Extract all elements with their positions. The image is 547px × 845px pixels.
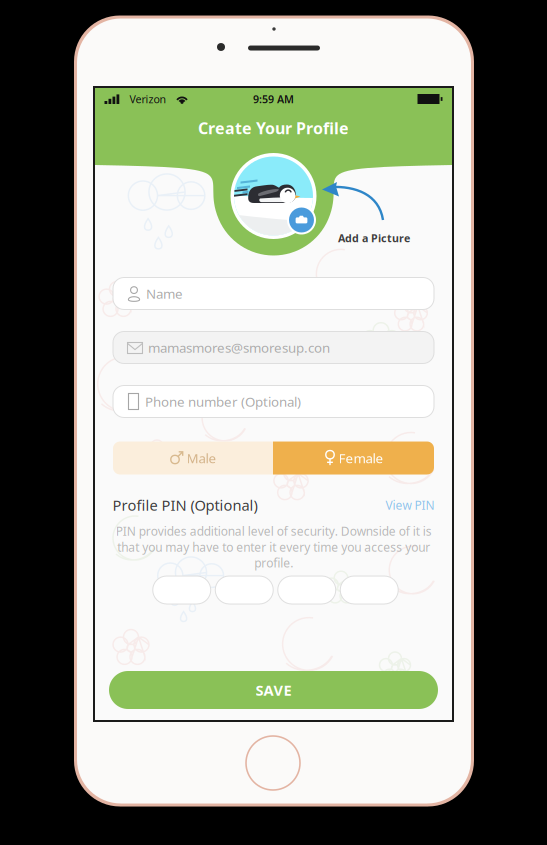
staticText: PIN provides additional level of securit…	[115, 523, 431, 571]
staticText: Create Your Profile	[198, 117, 349, 139]
button[interactable]: Male	[113, 441, 273, 474]
button[interactable]: PIN digit	[153, 576, 211, 604]
staticText: Female	[338, 449, 383, 467]
staticText: SAVE	[255, 680, 291, 700]
button[interactable]: Add a Picture	[287, 205, 316, 234]
staticText: Name	[146, 285, 183, 302]
staticText: View PIN	[385, 497, 434, 513]
button[interactable]: mamasmores@smoresup.con	[113, 331, 434, 363]
staticText: 9:59 AM	[253, 92, 294, 106]
button[interactable]: View PIN	[385, 497, 434, 513]
staticText: Phone number (Optional)	[145, 393, 301, 410]
button[interactable]: Phone number (Optional)	[113, 385, 434, 417]
staticText: Male	[186, 449, 216, 467]
button[interactable]: Female	[273, 441, 434, 474]
staticText: mamasmores@smoresup.con	[148, 339, 330, 356]
button[interactable]: PIN digit	[278, 576, 336, 604]
button[interactable]: PIN digit	[215, 576, 273, 604]
staticText: Verizon	[129, 92, 166, 106]
button[interactable]: PIN digit	[340, 576, 398, 604]
button[interactable]: Name	[113, 277, 434, 309]
staticText: Profile PIN (Optional)	[112, 495, 257, 515]
staticText: Add a Picture	[338, 231, 410, 245]
button[interactable]: SAVE	[109, 671, 438, 709]
